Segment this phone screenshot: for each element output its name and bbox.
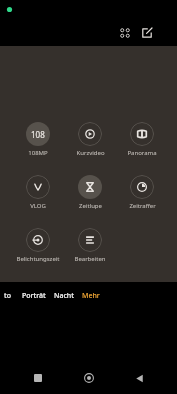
button[interactable]: Zeitlupe <box>64 175 116 210</box>
button[interactable]: Panorama <box>116 122 168 157</box>
staticText: to <box>4 291 11 301</box>
button[interactable]: to <box>0 288 15 304</box>
staticText: Panorama <box>127 149 157 157</box>
button[interactable]: Belichtungszeit <box>12 228 64 263</box>
button[interactable]: Bearbeiten <box>64 228 116 263</box>
button[interactable]: Back <box>126 365 152 391</box>
button[interactable]: 108 <box>12 122 64 157</box>
staticText: 108MP <box>28 149 48 157</box>
button[interactable]: Porträt <box>18 288 50 304</box>
staticText: Kurzvideo <box>76 149 105 157</box>
staticText: Zeitlupe <box>79 202 102 210</box>
button[interactable]: Mehr <box>78 288 104 304</box>
button[interactable]: Home <box>76 365 102 391</box>
button[interactable]: Recents <box>25 365 51 391</box>
button[interactable]: Kurzvideo <box>64 122 116 157</box>
button[interactable]: Lenses <box>114 22 136 44</box>
staticText: 108 <box>31 129 45 140</box>
staticText: Nacht <box>54 291 74 301</box>
staticText: Belichtungszeit <box>16 255 60 263</box>
button[interactable]: Edit <box>136 22 158 44</box>
staticText: Porträt <box>22 291 46 301</box>
staticText: Mehr <box>82 291 100 301</box>
staticText: VLOG <box>30 202 46 210</box>
staticText: Bearbeiten <box>74 255 106 263</box>
staticText: Zeitraffer <box>129 202 156 210</box>
button[interactable]: Zeitraffer <box>116 175 168 210</box>
button[interactable]: Nacht <box>50 288 78 304</box>
button[interactable]: VLOG <box>12 175 64 210</box>
